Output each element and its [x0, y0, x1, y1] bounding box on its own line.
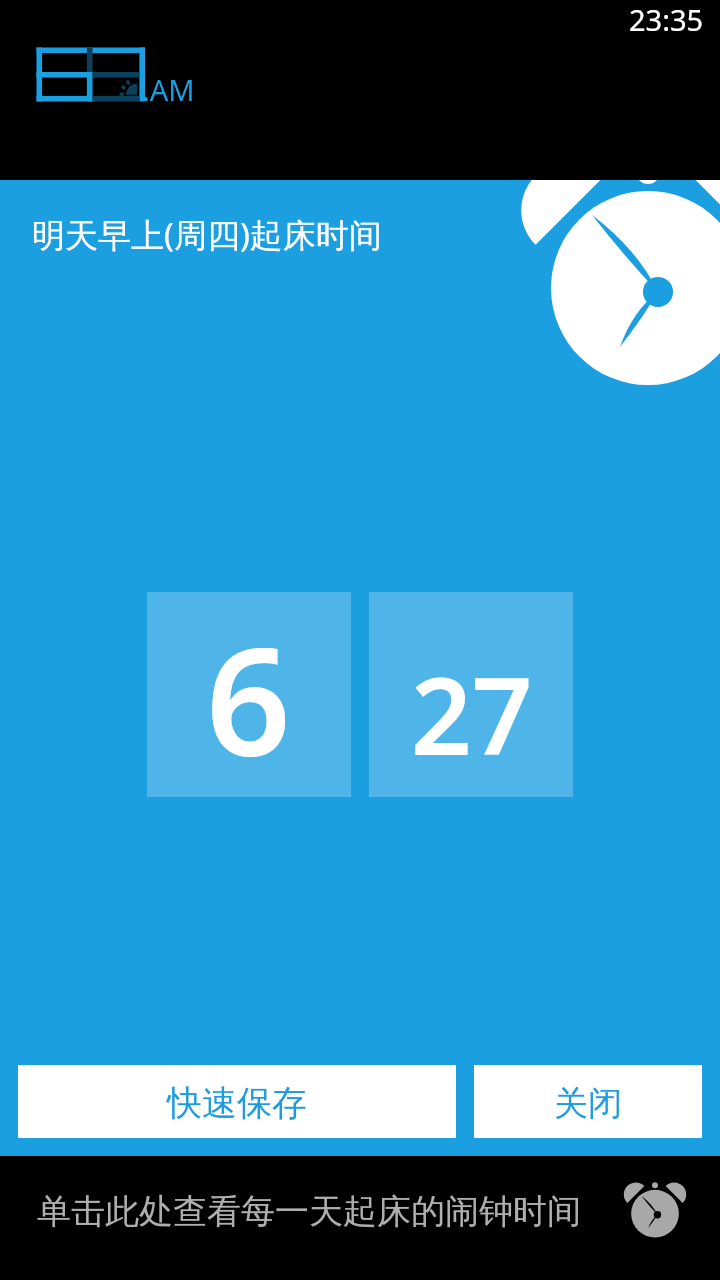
button[interactable]: 快速保存 [18, 1065, 456, 1138]
button[interactable]: 单击此处查看每一天起床的闹钟时间 [0, 1156, 720, 1280]
staticText: .AM [142, 70, 195, 109]
button[interactable]: 6 [147, 592, 351, 797]
button[interactable]: 关闭 [474, 1065, 702, 1138]
button[interactable]: 27 [369, 592, 573, 797]
staticText: 6 [206, 598, 291, 800]
staticText: 明天早上(周四)起床时间 [32, 212, 382, 257]
staticText: 关闭 [554, 1082, 622, 1125]
staticText: 27 [411, 642, 533, 786]
button[interactable]: 6.AM [30, 40, 202, 108]
other: Alarm list [624, 1179, 686, 1241]
staticText: 23:35 [629, 0, 704, 39]
staticText: 快速保存 [167, 1081, 307, 1125]
staticText: 单击此处查看每一天起床的闹钟时间 [37, 1190, 581, 1233]
